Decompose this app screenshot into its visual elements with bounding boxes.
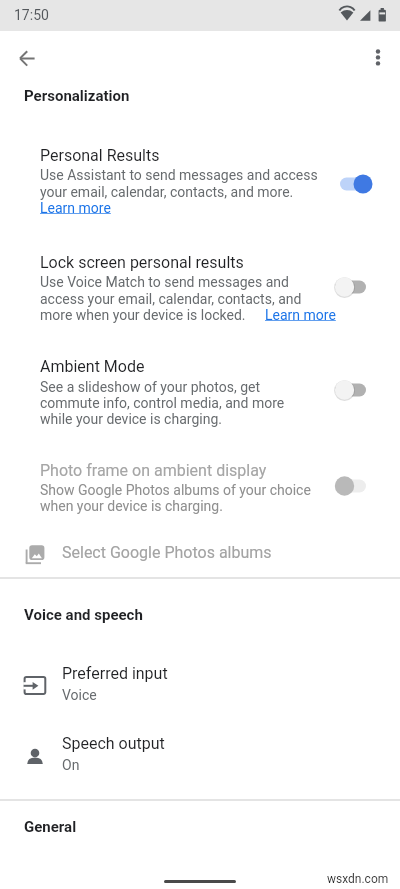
staticText: Personal Results: [40, 146, 160, 165]
staticText: See a slideshow of your photos, get: [40, 379, 261, 395]
button[interactable]: [5, 35, 50, 80]
staticText: Show Google Photos albums of your choice: [40, 482, 311, 498]
button[interactable]: [0, 723, 400, 783]
staticText: Voice and speech: [24, 606, 143, 624]
staticText: Use Assistant to send messages and acces…: [40, 167, 318, 183]
staticText: Learn more: [40, 200, 111, 216]
staticText: On: [62, 757, 80, 773]
staticText: your email, calendar, contacts, and more…: [40, 184, 294, 200]
staticText: Personalization: [24, 87, 130, 105]
button[interactable]: [0, 135, 400, 233]
staticText: more when your device is locked.: [40, 307, 249, 323]
button[interactable]: [0, 652, 400, 712]
staticText: 17:50: [14, 7, 49, 23]
button[interactable]: [356, 35, 400, 79]
staticText: Use Voice Match to send messages and: [40, 274, 289, 290]
staticText: General: [24, 818, 77, 836]
button[interactable]: [0, 244, 400, 336]
staticText: wsxdn.com: [327, 872, 389, 886]
staticText: access your email, calendar, contacts, a…: [40, 291, 302, 307]
button[interactable]: [0, 348, 400, 436]
staticText: Preferred input: [62, 664, 168, 683]
staticText: while your device is charging.: [40, 411, 222, 427]
staticText: Lock screen personal results: [40, 253, 244, 272]
staticText: Select Google Photos albums: [62, 543, 272, 562]
staticText: Voice: [62, 687, 97, 703]
staticText: when your device is charging.: [40, 498, 223, 514]
staticText: Photo frame on ambient display: [40, 461, 267, 480]
staticText: Ambient Mode: [40, 357, 145, 376]
button[interactable]: Learn more: [40, 200, 111, 216]
staticText: commute info, control media, and more: [40, 395, 285, 411]
staticText: Speech output: [62, 734, 165, 753]
button[interactable]: Learn more: [265, 307, 336, 323]
